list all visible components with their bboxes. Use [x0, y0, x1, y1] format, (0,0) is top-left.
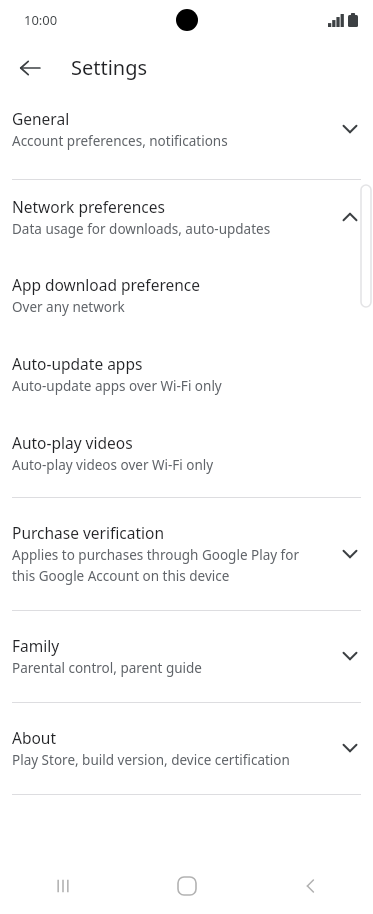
staticText: Auto-play videos [12, 432, 133, 453]
staticText: Applies to purchases through Google Play… [12, 546, 312, 585]
staticText: Parental control, parent guide [12, 659, 337, 677]
staticText: Network preferences [12, 196, 165, 217]
staticText: Settings [71, 54, 148, 81]
staticText: Family [12, 635, 60, 656]
staticText: Purchase verification [12, 522, 164, 543]
button[interactable]: General [0, 108, 373, 163]
staticText: Account preferences, notifications [12, 132, 337, 150]
staticText: About [12, 727, 56, 748]
button[interactable]: Purchase verification [0, 522, 373, 585]
staticText: Over any network [12, 298, 337, 316]
button[interactable]: Network preferences [0, 196, 373, 238]
staticText: Auto-update apps [12, 353, 143, 374]
button[interactable]: Back [249, 858, 373, 914]
staticText: Data usage for downloads, auto-updates [12, 220, 337, 238]
staticText: App download preference [12, 274, 201, 295]
button[interactable]: Family [0, 635, 373, 677]
staticText: Play Store, build version, device certif… [12, 751, 337, 769]
button[interactable]: Auto-play videos [0, 432, 373, 474]
staticText: General [12, 108, 70, 129]
button[interactable]: App download preference [0, 274, 373, 316]
button[interactable]: Auto-update apps [0, 353, 373, 395]
staticText: Auto-update apps over Wi-Fi only [12, 377, 337, 395]
button[interactable]: About [0, 727, 373, 769]
staticText: Auto-play videos over Wi-Fi only [12, 456, 337, 474]
button[interactable]: Back [8, 46, 52, 90]
staticText: 10:00 [24, 11, 58, 29]
button[interactable]: Recent apps [0, 858, 125, 914]
button[interactable]: Home [125, 858, 249, 914]
